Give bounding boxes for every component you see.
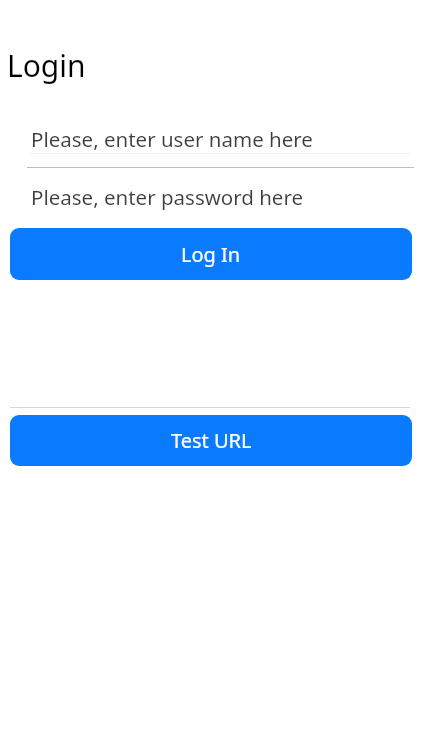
button[interactable]: Test URL — [10, 415, 412, 466]
staticText: Login — [7, 45, 86, 86]
staticText: Please, enter user name here — [31, 125, 313, 153]
staticText: Test URL — [171, 427, 252, 454]
button[interactable]: Log In — [10, 228, 412, 280]
button[interactable]: Please, enter user name here — [10, 125, 412, 167]
staticText: Log In — [181, 241, 241, 268]
button[interactable]: Please, enter password here — [10, 183, 412, 227]
staticText: Please, enter password here — [31, 183, 304, 211]
